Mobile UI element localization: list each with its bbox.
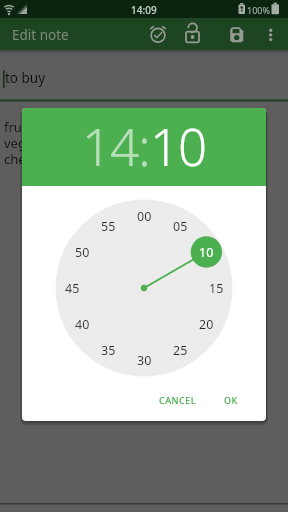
staticText: 00	[137, 208, 152, 225]
staticText: 30	[137, 352, 152, 369]
button[interactable]: 10	[22, 108, 46, 128]
staticText: fruit	[4, 118, 30, 136]
staticText: Edit note	[12, 26, 69, 44]
staticText: 35	[101, 342, 116, 359]
staticText: 05	[173, 218, 188, 235]
button[interactable]	[146, 22, 170, 46]
button[interactable]	[180, 22, 205, 46]
button[interactable]: 30	[22, 108, 46, 128]
button[interactable]	[0, 50, 288, 101]
staticText: 100%	[247, 4, 270, 16]
staticText: 10	[150, 111, 207, 180]
staticText: 45	[65, 280, 80, 297]
staticText: 14:09	[131, 3, 157, 17]
button[interactable]: 35	[22, 108, 46, 128]
button[interactable]: 45	[22, 108, 46, 128]
staticText: vegetables	[4, 134, 71, 152]
button[interactable]: CANCEL	[150, 387, 206, 413]
button[interactable]: 25	[22, 108, 46, 128]
button[interactable]: OK	[211, 387, 251, 413]
staticText: 20	[199, 316, 214, 333]
button[interactable]: 15	[22, 108, 46, 128]
button[interactable]: 50	[22, 108, 46, 128]
staticText: cheese	[4, 150, 47, 168]
staticText: 15	[209, 280, 224, 297]
button[interactable]: 20	[22, 108, 46, 128]
staticText: to buy	[5, 69, 46, 87]
button[interactable]	[262, 22, 280, 46]
staticText: 50	[75, 244, 90, 261]
staticText: 55	[101, 218, 116, 235]
staticText: 14:	[82, 111, 150, 180]
staticText: 10	[199, 244, 214, 261]
staticText: 40	[75, 316, 90, 333]
button[interactable]: 55	[22, 108, 46, 128]
button[interactable]: 00	[22, 108, 46, 128]
button[interactable]: 40	[22, 108, 46, 128]
staticText: OK	[224, 394, 238, 406]
button[interactable]: 05	[22, 108, 46, 128]
staticText: CANCEL	[159, 394, 197, 406]
button[interactable]	[229, 22, 253, 46]
staticText: 25	[173, 342, 188, 359]
